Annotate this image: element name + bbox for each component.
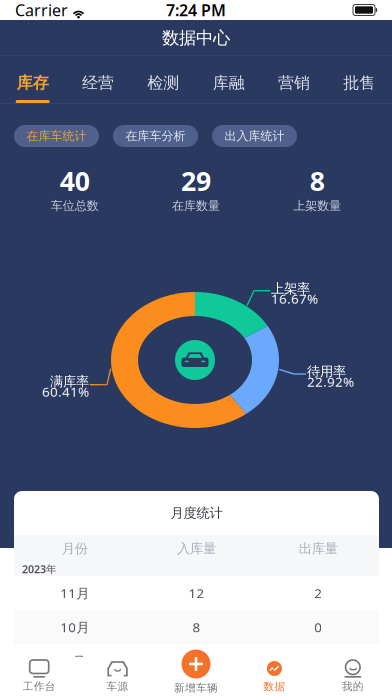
button[interactable]: 工作台 — [0, 657, 78, 696]
staticText: Carrier — [15, 0, 68, 21]
button[interactable]: 库存 — [0, 56, 65, 104]
staticText: 8 — [310, 163, 325, 198]
staticText: 12 — [188, 584, 204, 602]
staticText: 2 — [314, 584, 322, 602]
button[interactable]: 经营 — [65, 56, 131, 104]
staticText: 检测 — [147, 73, 179, 93]
staticText: 在库数量 — [172, 198, 220, 213]
staticText: 在库车统计 — [26, 129, 86, 143]
staticText: 库存 — [17, 73, 49, 93]
staticText: 满库率 — [50, 373, 89, 390]
staticText: 车位总数 — [51, 198, 99, 213]
staticText: 10月 — [60, 618, 89, 636]
staticText: 工作台 — [23, 680, 56, 693]
staticText: 7:24 PM — [166, 0, 226, 21]
staticText: 待用率 — [307, 363, 346, 380]
staticText: 营销 — [278, 73, 310, 93]
staticText: 40 — [60, 163, 90, 198]
button[interactable]: 营销 — [261, 56, 327, 104]
staticText: 月份 — [62, 540, 88, 557]
staticText: 9月 — [64, 652, 85, 670]
staticText: 上架数量 — [293, 198, 341, 213]
staticText: 数据中心 — [162, 27, 230, 49]
button[interactable]: 车源 — [78, 657, 157, 696]
staticText: 上架率 — [271, 280, 310, 297]
staticText: 11月 — [60, 584, 89, 602]
button[interactable]: 检测 — [131, 56, 196, 104]
button[interactable]: 我的 — [314, 657, 392, 696]
staticText: 批售 — [343, 73, 375, 93]
staticText: 60.41% — [42, 383, 89, 400]
staticText: 入库量 — [177, 540, 216, 557]
staticText: 新增车辆 — [174, 681, 218, 695]
staticText: 0 — [314, 618, 322, 636]
button[interactable]: 出入库统计 — [212, 125, 297, 147]
button[interactable]: 新增车辆 — [157, 657, 235, 696]
staticText: 出库量 — [299, 540, 338, 557]
staticText: 8 — [192, 618, 200, 636]
button[interactable]: 批售 — [327, 56, 392, 104]
staticText: 14 — [188, 652, 204, 670]
button[interactable]: 在库车分析 — [113, 125, 198, 147]
staticText: 在库车分析 — [125, 129, 185, 143]
button[interactable]: 库融 — [196, 56, 261, 104]
staticText: 22.92% — [307, 373, 354, 390]
staticText: 29 — [181, 163, 211, 198]
staticText: 2023年 — [22, 562, 57, 576]
button[interactable]: 在库车统计 — [14, 125, 99, 147]
staticText: 月度统计 — [170, 505, 222, 521]
staticText: 数据 — [263, 680, 285, 693]
staticText: 出入库统计 — [224, 129, 284, 143]
staticText: 库融 — [213, 73, 245, 93]
staticText: 16.67% — [271, 290, 318, 307]
staticText: 经营 — [82, 73, 114, 93]
staticText: 车源 — [107, 680, 129, 693]
staticText: 我的 — [342, 680, 364, 693]
button[interactable]: 数据 — [235, 657, 314, 696]
